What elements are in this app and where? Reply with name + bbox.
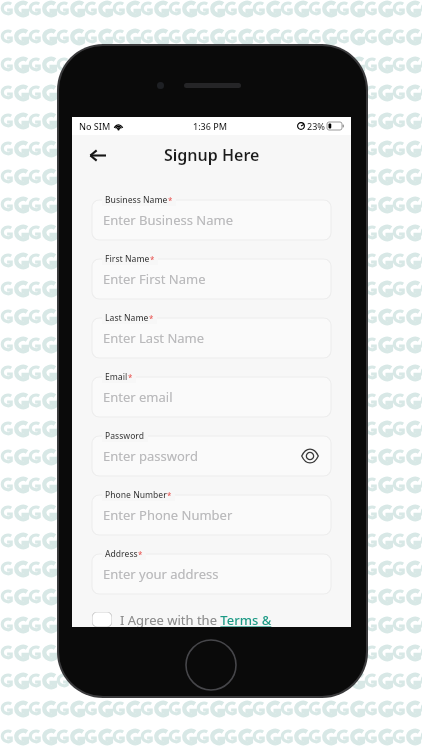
staticText: Enter password — [103, 447, 198, 465]
button[interactable]: Enter password — [92, 436, 331, 476]
staticText: Enter your address — [103, 565, 219, 583]
staticText: * — [128, 372, 133, 383]
staticText: No SIM — [79, 120, 111, 132]
staticText: Address — [105, 548, 138, 560]
staticText: Last Name — [105, 312, 149, 324]
button[interactable]: Enter Phone Number — [92, 495, 331, 535]
staticText: Enter Last Name — [103, 329, 205, 347]
staticText: * — [150, 254, 155, 265]
staticText: Enter Phone Number — [103, 506, 233, 524]
staticText: 23% — [307, 120, 325, 132]
staticText: * — [149, 313, 154, 324]
staticText: Enter email — [103, 388, 173, 406]
staticText: * — [138, 549, 143, 560]
button[interactable]: I Agree with the Terms & — [92, 611, 331, 627]
staticText: I Agree with the Terms & — [120, 611, 272, 627]
staticText: Signup Here — [164, 144, 260, 166]
button[interactable]: Back — [82, 140, 112, 170]
staticText: Enter Business Name — [103, 211, 233, 229]
staticText: Enter First Name — [103, 270, 206, 288]
button[interactable]: Enter Business Name — [92, 200, 331, 240]
button[interactable]: Enter your address — [92, 554, 331, 594]
staticText: Password — [105, 430, 145, 442]
staticText: * — [167, 490, 172, 501]
button[interactable]: Show password — [299, 445, 321, 467]
button[interactable]: Enter email — [92, 377, 331, 417]
button[interactable]: Enter Last Name — [92, 318, 331, 358]
staticText: Phone Number — [105, 489, 167, 501]
staticText: 1:36 PM — [193, 120, 227, 132]
staticText: Email — [105, 371, 128, 383]
staticText: * — [168, 195, 173, 206]
button[interactable]: Enter First Name — [92, 259, 331, 299]
staticText: First Name — [105, 253, 150, 265]
staticText: Business Name — [105, 194, 168, 206]
